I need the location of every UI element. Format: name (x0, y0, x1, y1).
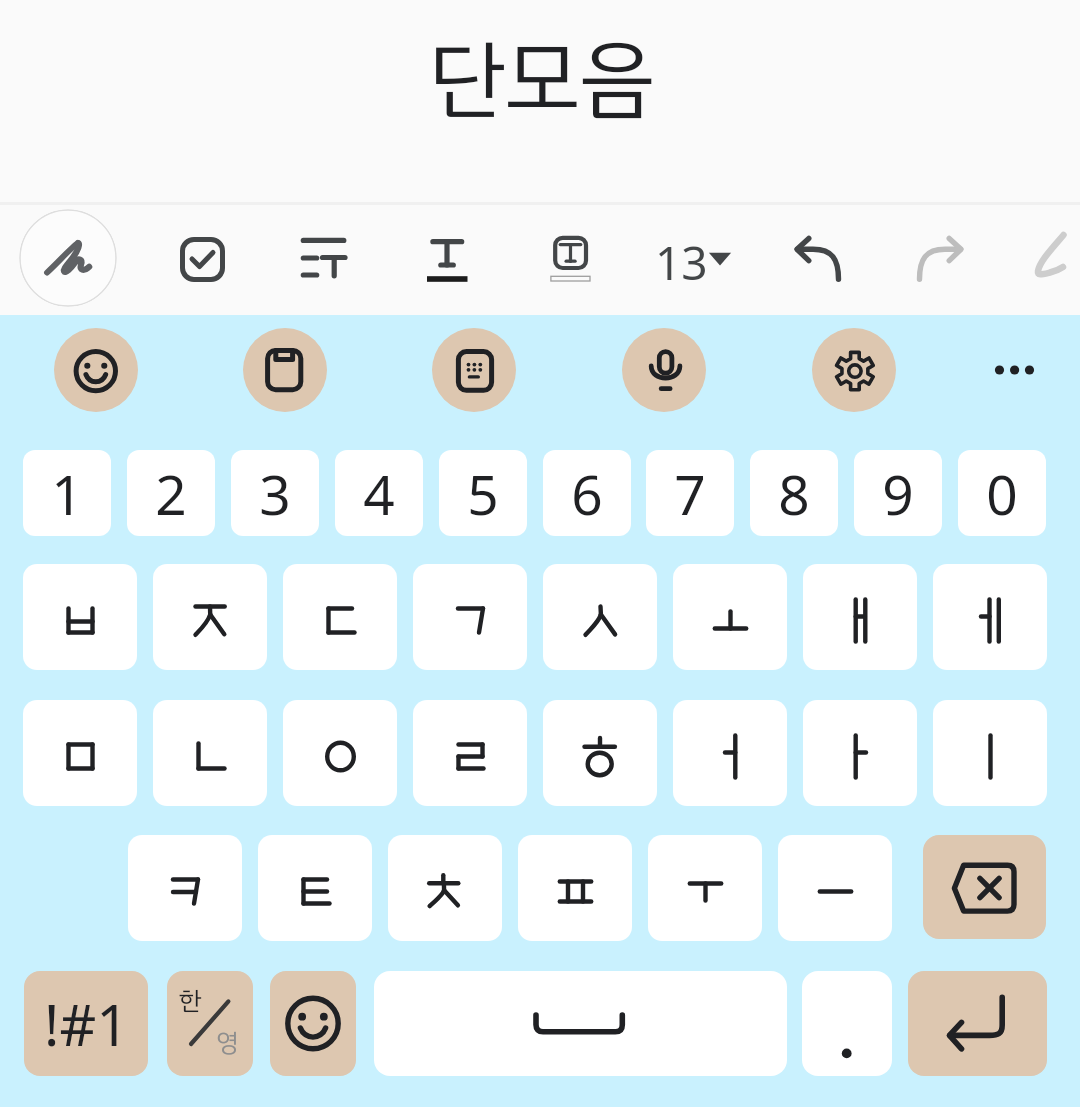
button[interactable]: Enter (908, 971, 1047, 1076)
button[interactable]: ㅔ (933, 564, 1047, 670)
button[interactable]: 6 (543, 450, 631, 536)
button[interactable]: ㅊ (388, 835, 502, 941)
button[interactable]: Settings (812, 328, 896, 412)
staticText: 5 (467, 456, 499, 531)
button[interactable]: !#1 (24, 971, 148, 1076)
button[interactable]: Font size (647, 209, 747, 303)
staticText: 영 (216, 1024, 239, 1062)
button[interactable]: 9 (854, 450, 942, 536)
staticText: 4 (363, 456, 395, 531)
button[interactable]: ㄹ (413, 700, 527, 806)
staticText: 6 (571, 456, 603, 531)
staticText: 한 (179, 982, 202, 1020)
staticText: 1 (51, 456, 83, 531)
staticText: 2 (155, 456, 187, 531)
staticText: !#1 (44, 985, 129, 1063)
button[interactable]: ㅗ (673, 564, 787, 670)
button[interactable]: ㅌ (258, 835, 372, 941)
button[interactable]: Undo (770, 213, 864, 307)
button[interactable]: Pen (1016, 209, 1080, 307)
button[interactable]: Voice input (622, 328, 706, 412)
button[interactable]: More options (972, 328, 1056, 412)
button[interactable]: ㅂ (23, 564, 137, 670)
button[interactable]: ㅋ (128, 835, 242, 941)
button[interactable]: Emoji (270, 971, 356, 1076)
staticText: 8 (778, 456, 810, 531)
button[interactable]: 7 (646, 450, 734, 536)
button[interactable]: 4 (335, 450, 423, 536)
button[interactable]: ㅍ (518, 835, 632, 941)
button[interactable]: 1 (23, 450, 111, 536)
button[interactable]: ㅈ (153, 564, 267, 670)
button[interactable]: ㅇ (283, 700, 397, 806)
button[interactable]: ㄷ (283, 564, 397, 670)
button[interactable]: Emoji (54, 328, 138, 412)
button[interactable]: Clipboard (243, 328, 327, 412)
button[interactable]: Period (802, 971, 892, 1076)
button[interactable]: Redo (893, 213, 987, 307)
staticText: 9 (882, 456, 914, 531)
staticText: 7 (674, 456, 706, 531)
button[interactable]: 0 (958, 450, 1046, 536)
button[interactable]: ㅏ (803, 700, 917, 806)
button[interactable]: 2 (127, 450, 215, 536)
button[interactable]: ㅣ (933, 700, 1047, 806)
button[interactable]: ㅡ (778, 835, 892, 941)
staticText: 3 (259, 456, 291, 531)
button[interactable]: 8 (750, 450, 838, 536)
staticText: 단모음 (430, 16, 655, 142)
button[interactable]: ㅓ (673, 700, 787, 806)
button[interactable]: Space (374, 971, 787, 1076)
button[interactable]: ㅎ (543, 700, 657, 806)
button[interactable]: 3 (231, 450, 319, 536)
button[interactable]: 5 (439, 450, 527, 536)
button[interactable]: ㅅ (543, 564, 657, 670)
staticText: 13 (655, 231, 708, 294)
button[interactable]: Korean English toggle (167, 971, 253, 1076)
button[interactable]: ㅁ (23, 700, 137, 806)
button[interactable]: ㄱ (413, 564, 527, 670)
staticText: 0 (986, 456, 1018, 531)
button[interactable]: Text box (524, 213, 618, 307)
button[interactable]: ㄴ (153, 700, 267, 806)
button[interactable]: Checklist (155, 213, 249, 307)
button[interactable]: ㅜ (648, 835, 762, 941)
button[interactable]: Text style (401, 213, 495, 307)
button[interactable]: ㅐ (803, 564, 917, 670)
button[interactable]: Backspace (923, 835, 1046, 939)
button[interactable]: Paragraph style (278, 213, 372, 307)
button[interactable]: Handwriting mode (19, 209, 117, 307)
button[interactable]: Keyboard layout (432, 328, 516, 412)
